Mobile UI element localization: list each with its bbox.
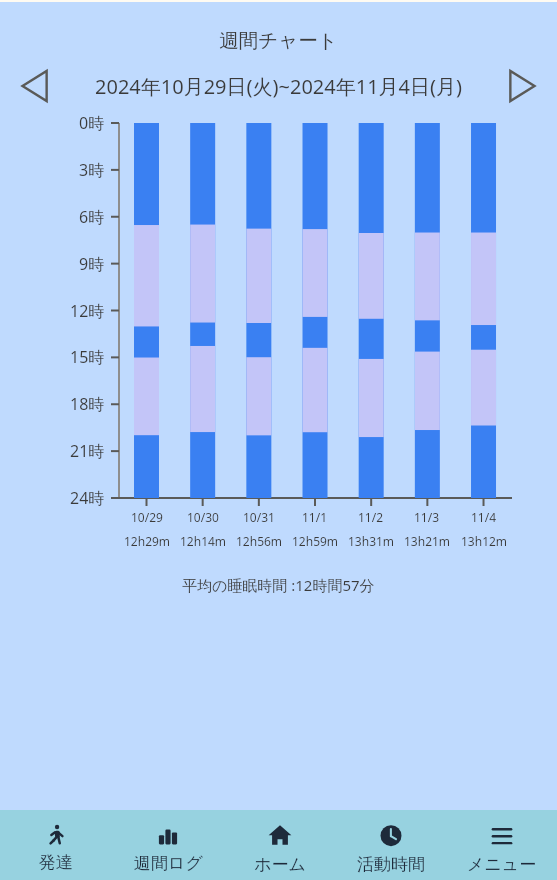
staticText: 発達 [39, 852, 73, 873]
staticText: 24時 [70, 487, 105, 509]
staticText: 週間チャート [219, 28, 338, 53]
staticText: 12h59m [292, 533, 339, 549]
staticText: 12h14m [180, 533, 227, 549]
staticText: 18時 [70, 393, 105, 415]
staticText: 15時 [70, 346, 105, 368]
staticText: 10/30 [187, 509, 219, 525]
staticText: 11/1 [302, 509, 328, 525]
staticText: メニュー [467, 854, 537, 875]
staticText: 2024年10月29日(火)~2024年11月4日(月) [95, 73, 463, 100]
staticText: 6時 [79, 206, 105, 228]
staticText: 12時 [70, 300, 105, 322]
staticText: 13h31m [348, 533, 395, 549]
staticText: 13h21m [404, 533, 451, 549]
staticText: 活動時間 [357, 854, 425, 875]
staticText: 11/2 [358, 509, 384, 525]
staticText: 3時 [79, 159, 105, 181]
staticText: 11/4 [471, 509, 497, 525]
button[interactable]: メニュー [446, 810, 557, 880]
staticText: ホーム [254, 854, 306, 875]
staticText: 12h56m [236, 533, 283, 549]
staticText: 0時 [79, 112, 105, 134]
button[interactable]: 発達 [0, 810, 112, 880]
staticText: 13h12m [461, 533, 508, 549]
button[interactable]: 週間ログ [112, 810, 224, 880]
staticText: 21時 [70, 440, 105, 462]
button[interactable]: ホーム [224, 810, 335, 880]
staticText: 平均の睡眠時間 :12時間57分 [182, 575, 375, 595]
staticText: 10/31 [243, 509, 275, 525]
staticText: 週間ログ [134, 853, 203, 874]
button[interactable]: 活動時間 [335, 810, 446, 880]
staticText: 11/3 [414, 509, 440, 525]
staticText: 12h29m [124, 533, 171, 549]
staticText: 10/29 [131, 509, 163, 525]
button[interactable]: Previous week [11, 61, 61, 111]
button[interactable]: Next week [496, 61, 546, 111]
staticText: 9時 [79, 253, 105, 275]
